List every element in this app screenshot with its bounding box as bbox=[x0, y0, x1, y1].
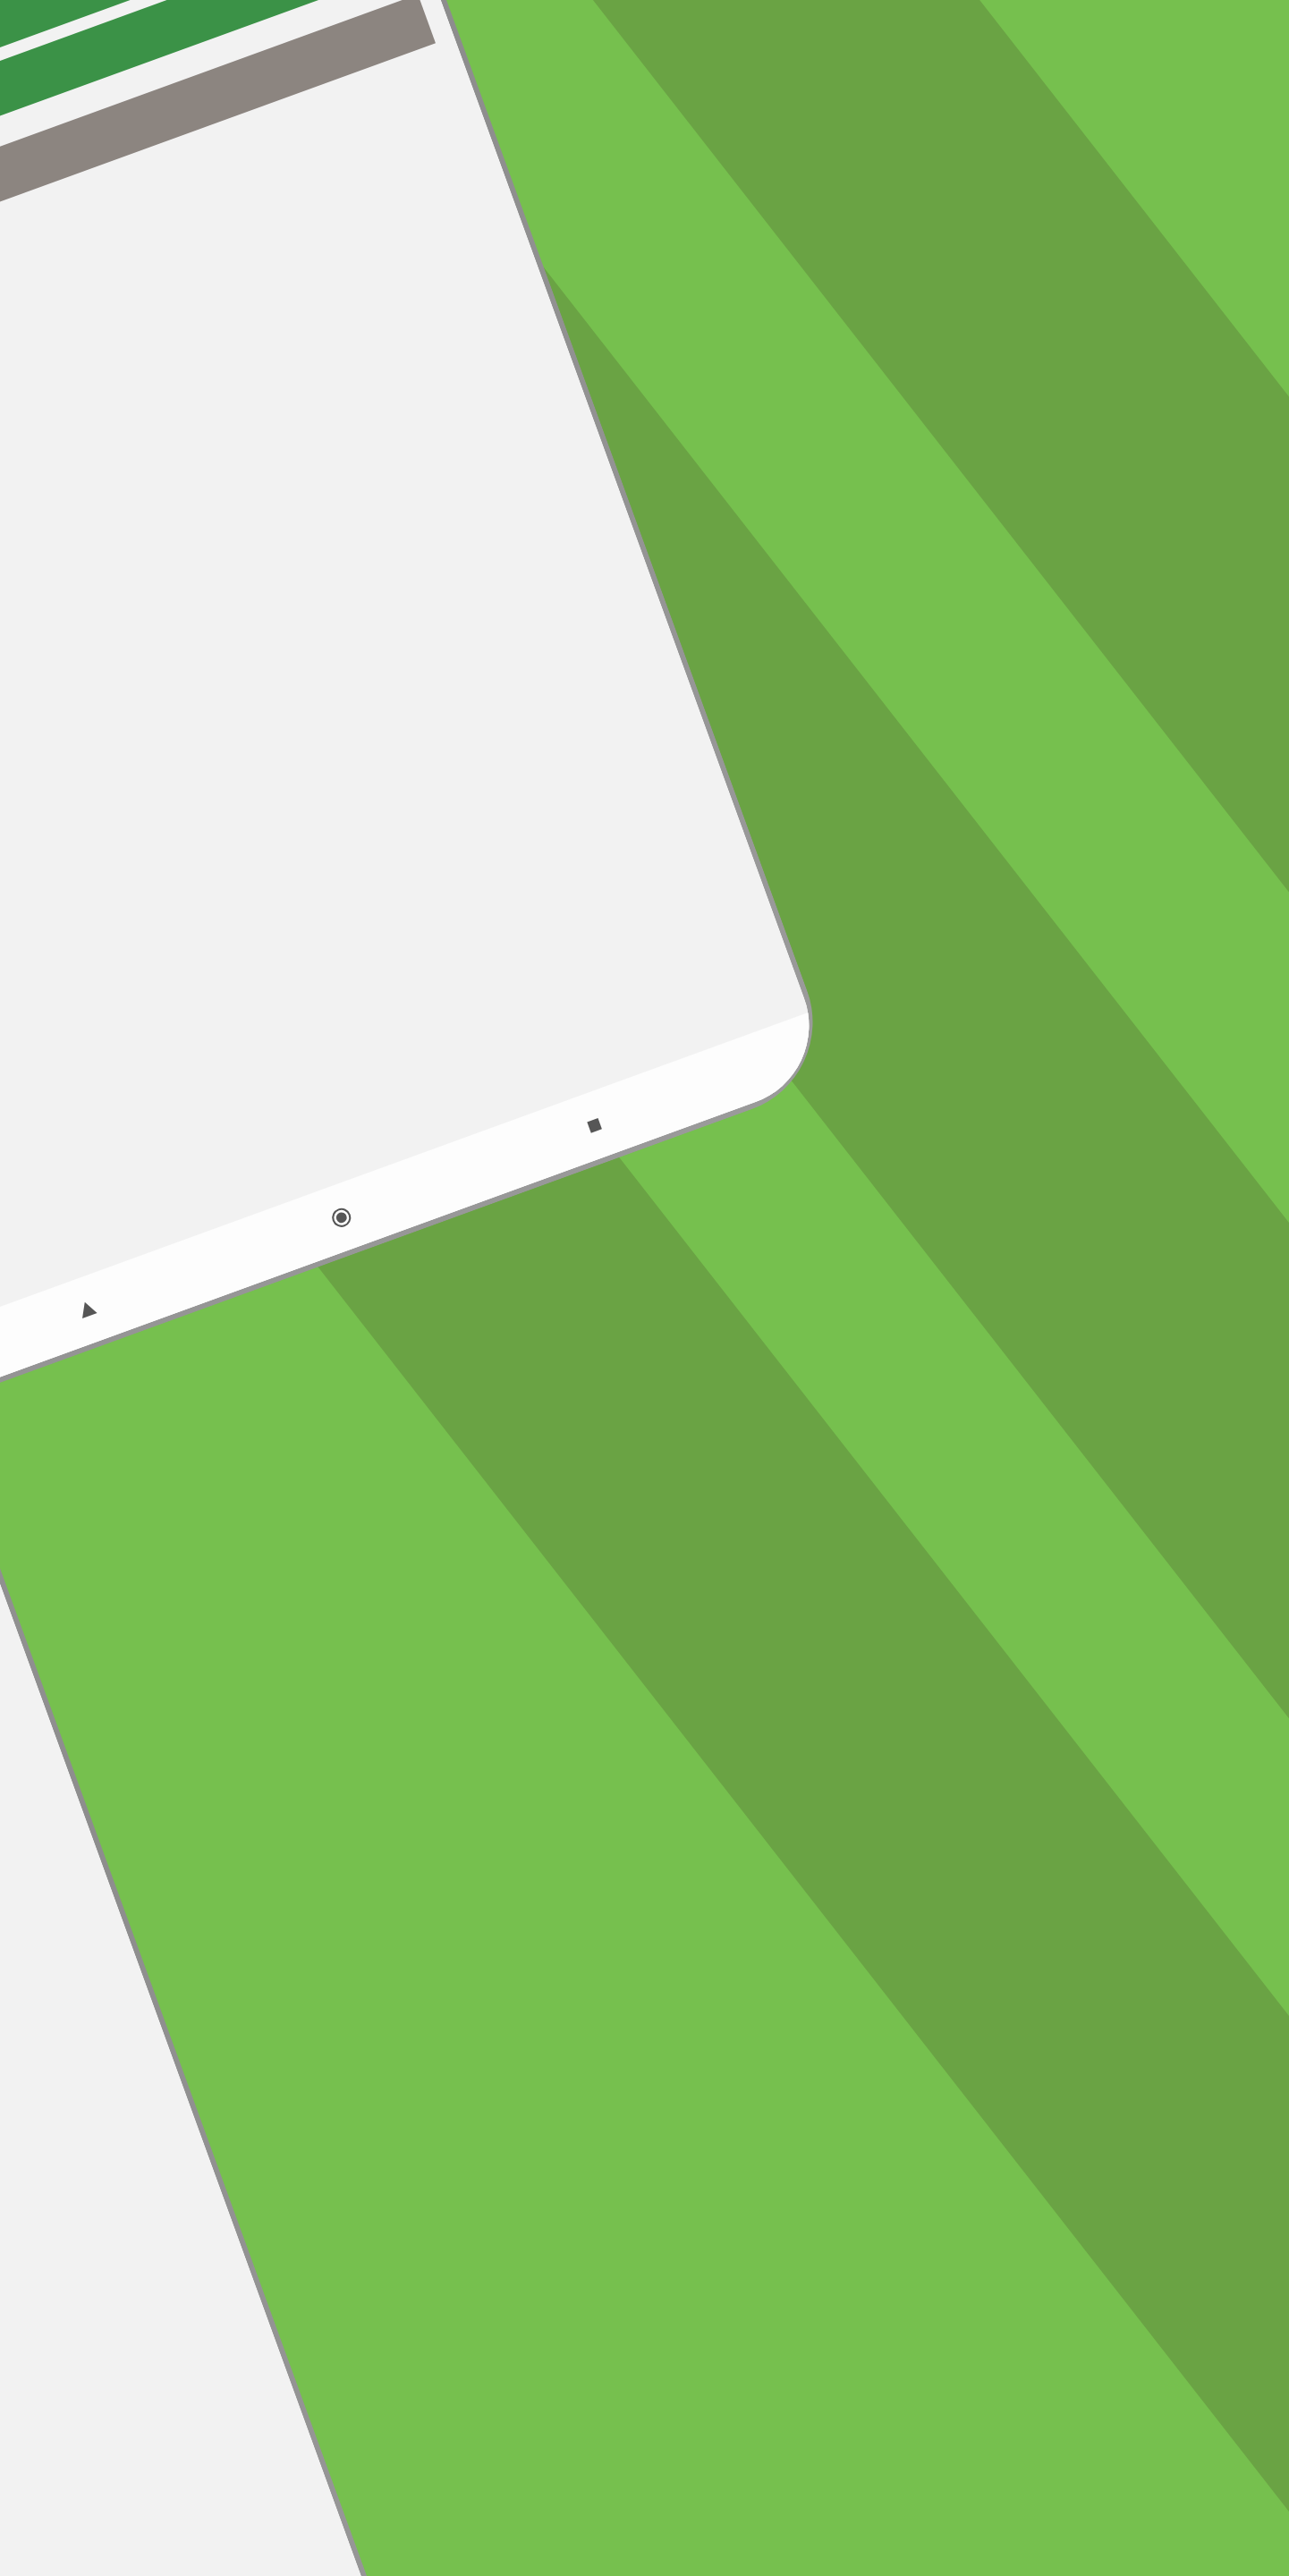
button[interactable]: Campaign bbox=[0, 0, 408, 303]
button[interactable]: Village Visit bbox=[0, 0, 364, 182]
button[interactable]: Back bbox=[51, 1273, 124, 1347]
button[interactable]: Logout bbox=[0, 0, 436, 379]
button[interactable]: Dealer Visit bbox=[0, 0, 386, 242]
button[interactable]: Home bbox=[305, 1181, 378, 1254]
button[interactable]: Recent apps bbox=[558, 1089, 631, 1162]
staticText: Logout bbox=[0, 162, 2, 211]
